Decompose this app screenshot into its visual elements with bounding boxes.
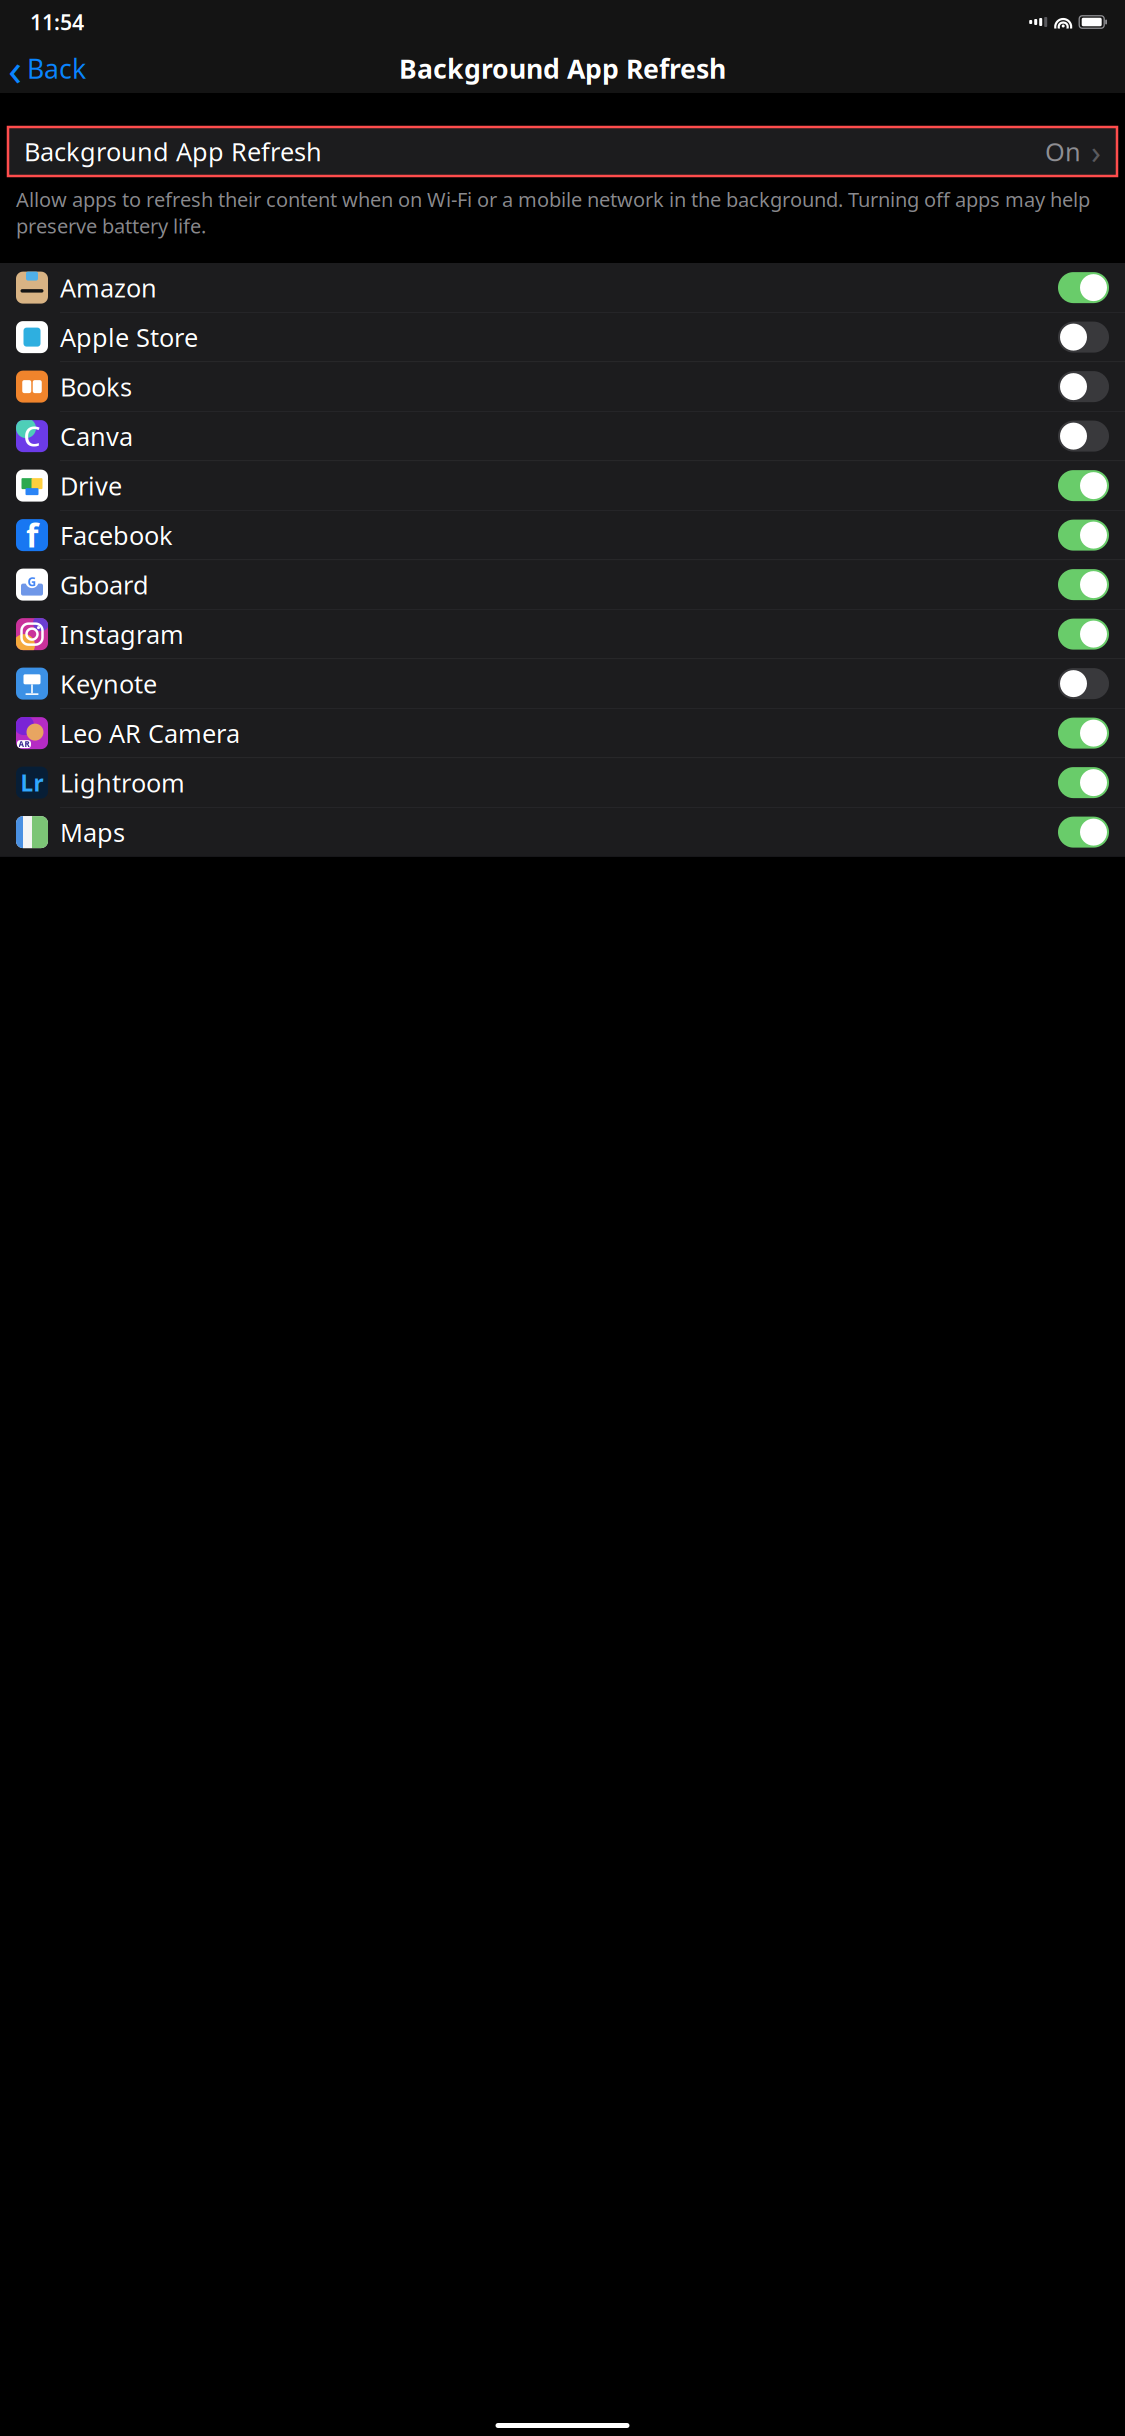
button[interactable]: Background App Refresh	[0, 127, 1125, 176]
button[interactable]: Books	[0, 362, 1125, 411]
button[interactable]	[0, 313, 1125, 362]
button[interactable]: Amazon	[0, 263, 1125, 312]
button[interactable]: Instagram	[0, 610, 1125, 659]
button[interactable]: Drive	[0, 461, 1125, 510]
staticText: Maps	[60, 815, 125, 849]
button[interactable]: f	[0, 511, 1125, 560]
staticText: Background App Refresh	[24, 135, 322, 168]
staticText: C	[23, 418, 40, 454]
button[interactable]: ‹	[0, 32, 86, 105]
staticText: Amazon	[60, 271, 157, 304]
staticText: On	[1045, 135, 1081, 168]
staticText: Drive	[60, 469, 122, 502]
button[interactable]: Lr	[0, 758, 1125, 807]
staticText: f	[26, 514, 38, 556]
staticText: Canva	[60, 419, 133, 453]
button[interactable]: Maps	[0, 808, 1125, 857]
staticText: G	[27, 574, 36, 590]
staticText: Gboard	[60, 568, 149, 601]
button[interactable]: AR	[0, 709, 1125, 758]
staticText: ›	[1091, 130, 1101, 173]
staticText: Books	[60, 370, 132, 403]
button[interactable]: Keynote	[0, 659, 1125, 708]
staticText: Keynote	[60, 667, 157, 700]
staticText: AR	[18, 739, 29, 749]
staticText: Lightroom	[60, 766, 185, 799]
staticText: 11:54	[30, 8, 84, 36]
staticText: Instagram	[60, 617, 184, 651]
staticText: Back	[27, 51, 86, 86]
staticText: Apple Store	[60, 320, 198, 354]
staticText: Background App Refresh	[399, 51, 726, 86]
staticText: Facebook	[60, 518, 173, 552]
staticText: ‹	[8, 38, 22, 99]
staticText: Lr	[20, 768, 43, 798]
staticText: Leo AR Camera	[60, 716, 240, 750]
button[interactable]: G	[0, 560, 1125, 609]
staticText: Allow apps to refresh their content when…	[16, 186, 1090, 239]
button[interactable]: C	[0, 412, 1125, 461]
